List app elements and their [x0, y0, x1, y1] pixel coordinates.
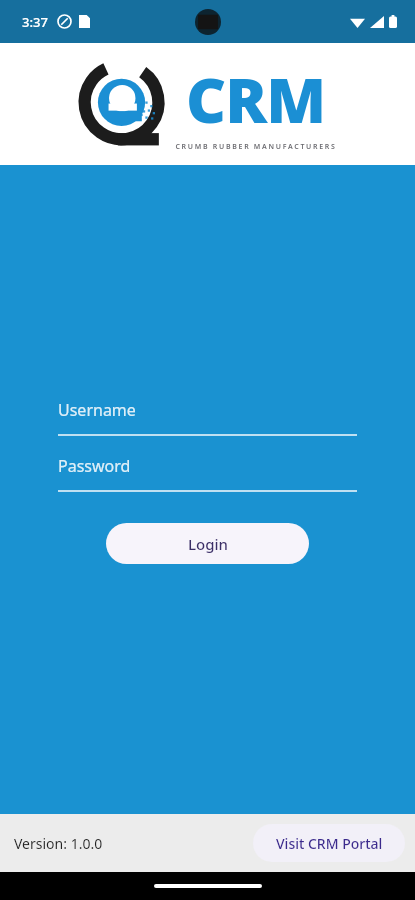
staticText: Visit CRM Portal	[276, 834, 383, 853]
staticText: 3:37	[22, 13, 48, 31]
button[interactable]: Username	[58, 399, 357, 436]
button[interactable]: Login	[106, 523, 309, 564]
button[interactable]: Password	[58, 455, 357, 492]
staticText: Username	[58, 399, 136, 421]
staticText: CRM	[186, 57, 326, 141]
staticText: Login	[188, 534, 228, 554]
staticText: Password	[58, 455, 131, 477]
staticText: Version: 1.0.0	[14, 834, 103, 853]
staticText: CRUMB RUBBER MANUFACTURERS	[175, 142, 337, 152]
button[interactable]: Visit CRM Portal	[253, 824, 405, 862]
